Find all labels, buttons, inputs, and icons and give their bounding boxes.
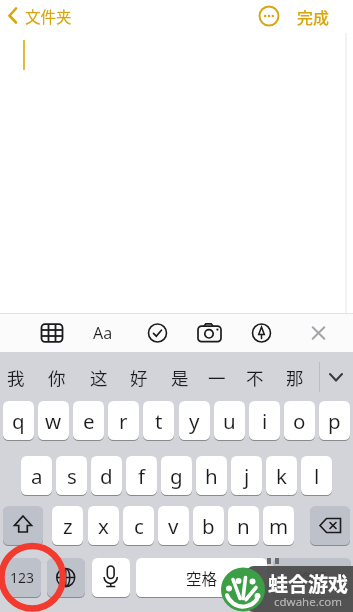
button[interactable]: f — [126, 456, 157, 495]
button[interactable] — [166, 363, 194, 391]
button[interactable]: 换行 — [273, 558, 351, 597]
button[interactable]: x — [88, 506, 119, 545]
button[interactable] — [47, 558, 85, 597]
button[interactable]: t — [143, 401, 174, 440]
staticText: d — [100, 462, 113, 490]
staticText: 那 — [286, 365, 304, 390]
staticText: r — [119, 407, 128, 435]
button[interactable] — [3, 506, 43, 545]
staticText: 文件夹 — [25, 5, 72, 27]
button[interactable] — [310, 506, 350, 545]
button[interactable]: v — [158, 506, 189, 545]
staticText: p — [328, 407, 341, 435]
staticText: j — [244, 462, 250, 490]
staticText: 一 — [208, 365, 226, 390]
button[interactable]: p — [319, 401, 350, 440]
button[interactable]: k — [266, 456, 297, 495]
button[interactable] — [92, 558, 130, 597]
staticText: h — [205, 462, 218, 490]
staticText: 完成 — [297, 5, 330, 28]
button[interactable]: y — [179, 401, 210, 440]
staticText: n — [237, 512, 250, 540]
staticText: cdwahe.com — [274, 594, 342, 610]
button[interactable]: r — [108, 401, 139, 440]
staticText: Aa — [93, 322, 113, 344]
button[interactable] — [241, 363, 269, 391]
button[interactable] — [89, 321, 117, 345]
staticText: b — [202, 512, 215, 540]
staticText: l — [314, 462, 320, 490]
staticText: 是 — [171, 365, 189, 390]
button[interactable]: a — [21, 456, 52, 495]
button[interactable]: n — [228, 506, 259, 545]
button[interactable]: 空格 — [136, 558, 267, 597]
button[interactable]: e — [73, 401, 104, 440]
button[interactable]: w — [38, 401, 69, 440]
staticText: z — [63, 512, 73, 540]
button[interactable]: u — [214, 401, 245, 440]
button[interactable]: z — [52, 506, 83, 545]
button[interactable] — [2, 363, 30, 391]
staticText: q — [12, 407, 25, 435]
button[interactable] — [289, 0, 337, 32]
staticText: c — [134, 512, 144, 540]
staticText: i — [262, 407, 268, 435]
staticText: 不 — [246, 365, 264, 390]
staticText: 这 — [90, 365, 108, 390]
staticText: 换行 — [297, 567, 328, 589]
button[interactable] — [0, 0, 90, 32]
staticText: m — [269, 512, 289, 540]
button[interactable]: g — [161, 456, 192, 495]
staticText: x — [98, 512, 109, 540]
staticText: 123 — [10, 568, 35, 587]
button[interactable] — [255, 2, 283, 30]
button[interactable]: m — [263, 506, 294, 545]
button[interactable] — [249, 321, 274, 345]
staticText: e — [83, 407, 95, 435]
button[interactable] — [145, 321, 170, 345]
button[interactable]: h — [196, 456, 227, 495]
button[interactable]: c — [123, 506, 154, 545]
staticText: f — [138, 462, 146, 490]
button[interactable]: o — [284, 401, 315, 440]
button[interactable]: j — [231, 456, 262, 495]
button[interactable]: s — [56, 456, 87, 495]
button[interactable]: b — [193, 506, 224, 545]
button[interactable]: d — [91, 456, 122, 495]
staticText: t — [155, 407, 163, 435]
button[interactable]: q — [3, 401, 34, 440]
button[interactable] — [85, 363, 113, 391]
staticText: 我 — [7, 365, 25, 390]
button[interactable]: l — [301, 456, 332, 495]
staticText: y — [189, 407, 200, 435]
button[interactable] — [197, 321, 222, 345]
staticText: g — [170, 462, 183, 490]
staticText: a — [31, 462, 43, 490]
button[interactable] — [43, 363, 71, 391]
staticText: s — [67, 462, 77, 490]
button[interactable] — [281, 363, 309, 391]
staticText: 空格 — [186, 567, 218, 589]
button[interactable] — [39, 321, 65, 345]
button[interactable]: i — [249, 401, 280, 440]
staticText: w — [45, 407, 62, 435]
button[interactable]: 123 — [3, 558, 41, 597]
staticText: o — [293, 407, 306, 435]
staticText: k — [276, 462, 287, 490]
button[interactable] — [125, 363, 153, 391]
button[interactable] — [325, 365, 347, 389]
staticText: u — [223, 407, 236, 435]
staticText: 好 — [130, 365, 148, 390]
staticText: 蛙合游戏 — [268, 569, 348, 596]
button[interactable] — [203, 363, 231, 391]
staticText: 你 — [48, 365, 66, 390]
button[interactable] — [308, 322, 329, 344]
staticText: v — [168, 512, 179, 540]
